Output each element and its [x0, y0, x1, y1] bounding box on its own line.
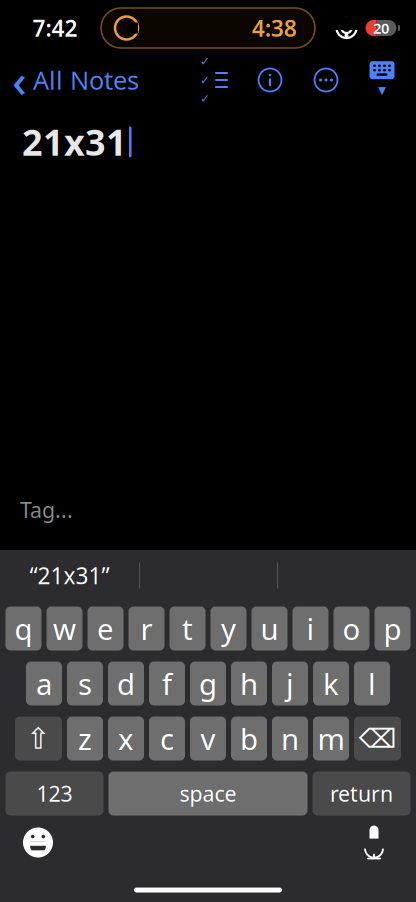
staticText: All Notes [33, 63, 139, 97]
staticText: return [330, 779, 393, 808]
button[interactable]: y [210, 606, 246, 650]
staticText: p [383, 609, 401, 648]
button[interactable]: a [26, 661, 62, 705]
staticText: v [200, 719, 215, 758]
staticText: ✓ [200, 73, 210, 87]
staticText: 7:42 [32, 13, 77, 43]
staticText: ▾ [378, 81, 386, 99]
staticText: x [118, 719, 134, 758]
button[interactable]: v [190, 716, 226, 760]
button[interactable]: Checklist [194, 60, 234, 100]
button[interactable]: More options [306, 60, 346, 100]
button[interactable]: Dictation [352, 820, 396, 864]
button[interactable]: x [108, 716, 144, 760]
button[interactable]: n [272, 716, 308, 760]
staticText: z [78, 719, 92, 758]
staticText: a [36, 664, 52, 703]
button[interactable]: o [333, 606, 369, 650]
button[interactable]: space [108, 771, 307, 815]
staticText: g [199, 664, 217, 703]
button[interactable]: g [190, 661, 226, 705]
button[interactable]: return [312, 771, 410, 815]
staticText: o [342, 609, 360, 648]
button[interactable]: e [87, 606, 123, 650]
button[interactable]: ‹ [0, 58, 139, 102]
staticText: q [14, 609, 32, 648]
staticText: m [317, 719, 344, 758]
staticText: j [286, 664, 294, 703]
staticText: ‹ [12, 50, 27, 110]
staticText: 123 [36, 779, 72, 808]
staticText: d [117, 664, 135, 703]
button[interactable]: r [128, 606, 164, 650]
button[interactable]: l [354, 661, 390, 705]
staticText: “21x31” [29, 560, 109, 590]
staticText: t [182, 609, 193, 648]
staticText: ✓ [200, 92, 210, 105]
button[interactable]: Shift [15, 716, 62, 760]
staticText: i [306, 609, 314, 648]
staticText: ✓ [200, 55, 210, 68]
button[interactable]: j [272, 661, 308, 705]
staticText: 4:38 [252, 13, 297, 43]
button[interactable]: t [169, 606, 205, 650]
staticText: y [221, 609, 236, 648]
button[interactable]: “21x31” [0, 551, 139, 599]
button[interactable]: 123 [5, 771, 103, 815]
staticText: b [240, 719, 258, 758]
button[interactable]: w [46, 606, 82, 650]
button[interactable]: Delete [354, 716, 401, 760]
button[interactable]: m [313, 716, 349, 760]
staticText: u [260, 609, 278, 648]
button[interactable]: Info [250, 60, 290, 100]
staticText: l [368, 664, 376, 703]
button[interactable]: p [374, 606, 410, 650]
staticText: Tag... [20, 496, 73, 524]
staticText: n [281, 719, 299, 758]
staticText: 21x31 [22, 118, 127, 166]
staticText: c [160, 719, 174, 758]
button[interactable]: s [67, 661, 103, 705]
button[interactable]: k [313, 661, 349, 705]
staticText: ⇧ [26, 722, 51, 755]
staticText: e [97, 609, 114, 648]
button[interactable]: d [108, 661, 144, 705]
staticText: k [323, 664, 339, 703]
staticText: ⌫ [358, 723, 396, 754]
button[interactable]: i [292, 606, 328, 650]
button[interactable]: u [251, 606, 287, 650]
button[interactable]: z [67, 716, 103, 760]
button[interactable]: c [149, 716, 185, 760]
button[interactable]: Hide keyboard [362, 60, 402, 100]
staticText: w [53, 609, 76, 648]
button[interactable]: f [149, 661, 185, 705]
button[interactable]: h [231, 661, 267, 705]
staticText: h [240, 664, 258, 703]
button[interactable]: b [231, 716, 267, 760]
staticText: s [78, 664, 92, 703]
staticText: f [162, 664, 172, 703]
staticText: 20 [373, 18, 389, 38]
button[interactable]: Emoji [16, 820, 60, 864]
staticText: space [179, 779, 236, 808]
button[interactable]: q [5, 606, 41, 650]
staticText: r [140, 609, 152, 648]
